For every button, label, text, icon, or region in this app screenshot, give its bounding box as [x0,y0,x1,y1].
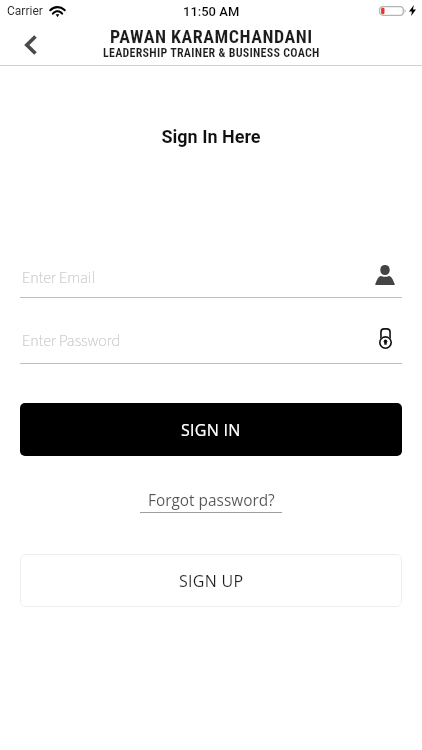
staticText: PAWAN KARAMCHANDANI [110,26,313,47]
staticText: SIGN IN [181,419,241,441]
staticText: Carrier [7,4,43,18]
staticText: Forgot password? [148,490,275,511]
button[interactable]: SIGN UP [20,554,402,607]
button[interactable]: SIGN IN [20,403,402,456]
button[interactable]: Back [11,26,49,64]
staticText: LEADERSHIP TRAINER & BUSINESS COACH [103,46,320,60]
button[interactable]: Forgot password? [140,490,282,513]
staticText: Sign In Here [0,126,422,147]
staticText: Enter Password [22,330,379,353]
staticText: 11:50 AM [183,4,240,19]
staticText: SIGN UP [179,570,244,592]
staticText: Enter Email [22,267,375,290]
